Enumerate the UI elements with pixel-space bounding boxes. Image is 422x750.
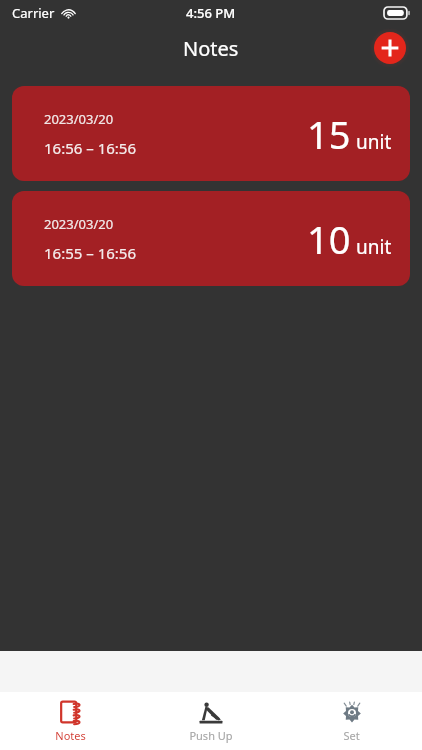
staticText: unit (356, 234, 392, 260)
staticText: 10 (307, 213, 351, 265)
button[interactable]: Add note (370, 28, 410, 68)
staticText: Notes (55, 728, 86, 743)
staticText: 2023/03/20 (44, 215, 114, 233)
staticText: Carrier (12, 4, 55, 22)
staticText: Push Up (189, 728, 233, 743)
staticText: unit (356, 129, 392, 155)
staticText: Set (343, 728, 360, 743)
button[interactable]: 2023/03/20 (12, 191, 410, 286)
staticText: 2023/03/20 (44, 110, 114, 128)
staticText: Notes (183, 35, 239, 62)
button[interactable]: Set (281, 692, 422, 750)
staticText: 4:56 PM (186, 4, 236, 22)
staticText: 16:56 – 16:56 (44, 138, 136, 158)
button[interactable]: Notes (0, 692, 140, 750)
staticText: 16:55 – 16:56 (44, 243, 136, 263)
button[interactable]: 2023/03/20 (12, 86, 410, 181)
button[interactable]: Push Up (140, 692, 281, 750)
staticText: 15 (307, 108, 351, 160)
